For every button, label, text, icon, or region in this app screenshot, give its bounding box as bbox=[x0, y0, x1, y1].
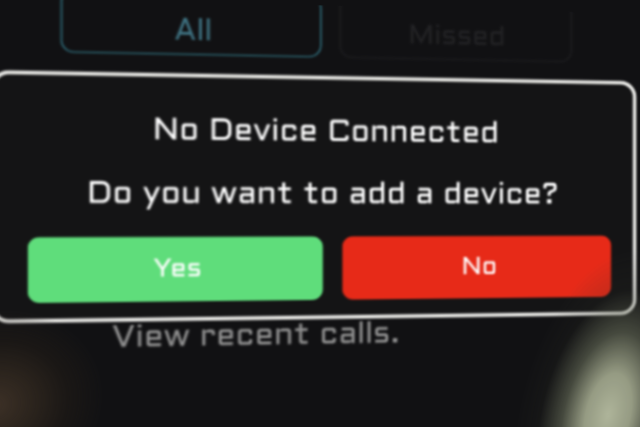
staticText: No bbox=[461, 256, 497, 279]
staticText: No Device Connected bbox=[0, 115, 637, 149]
staticText: View recent calls. bbox=[112, 321, 400, 354]
button[interactable]: Yes bbox=[28, 236, 323, 303]
button[interactable]: No bbox=[342, 236, 611, 300]
staticText: Do you want to add a device? bbox=[0, 179, 637, 209]
staticText: Yes bbox=[153, 257, 203, 282]
staticText: Missed bbox=[408, 24, 506, 51]
staticText: All bbox=[174, 17, 213, 46]
button[interactable]: All bbox=[60, 0, 322, 58]
